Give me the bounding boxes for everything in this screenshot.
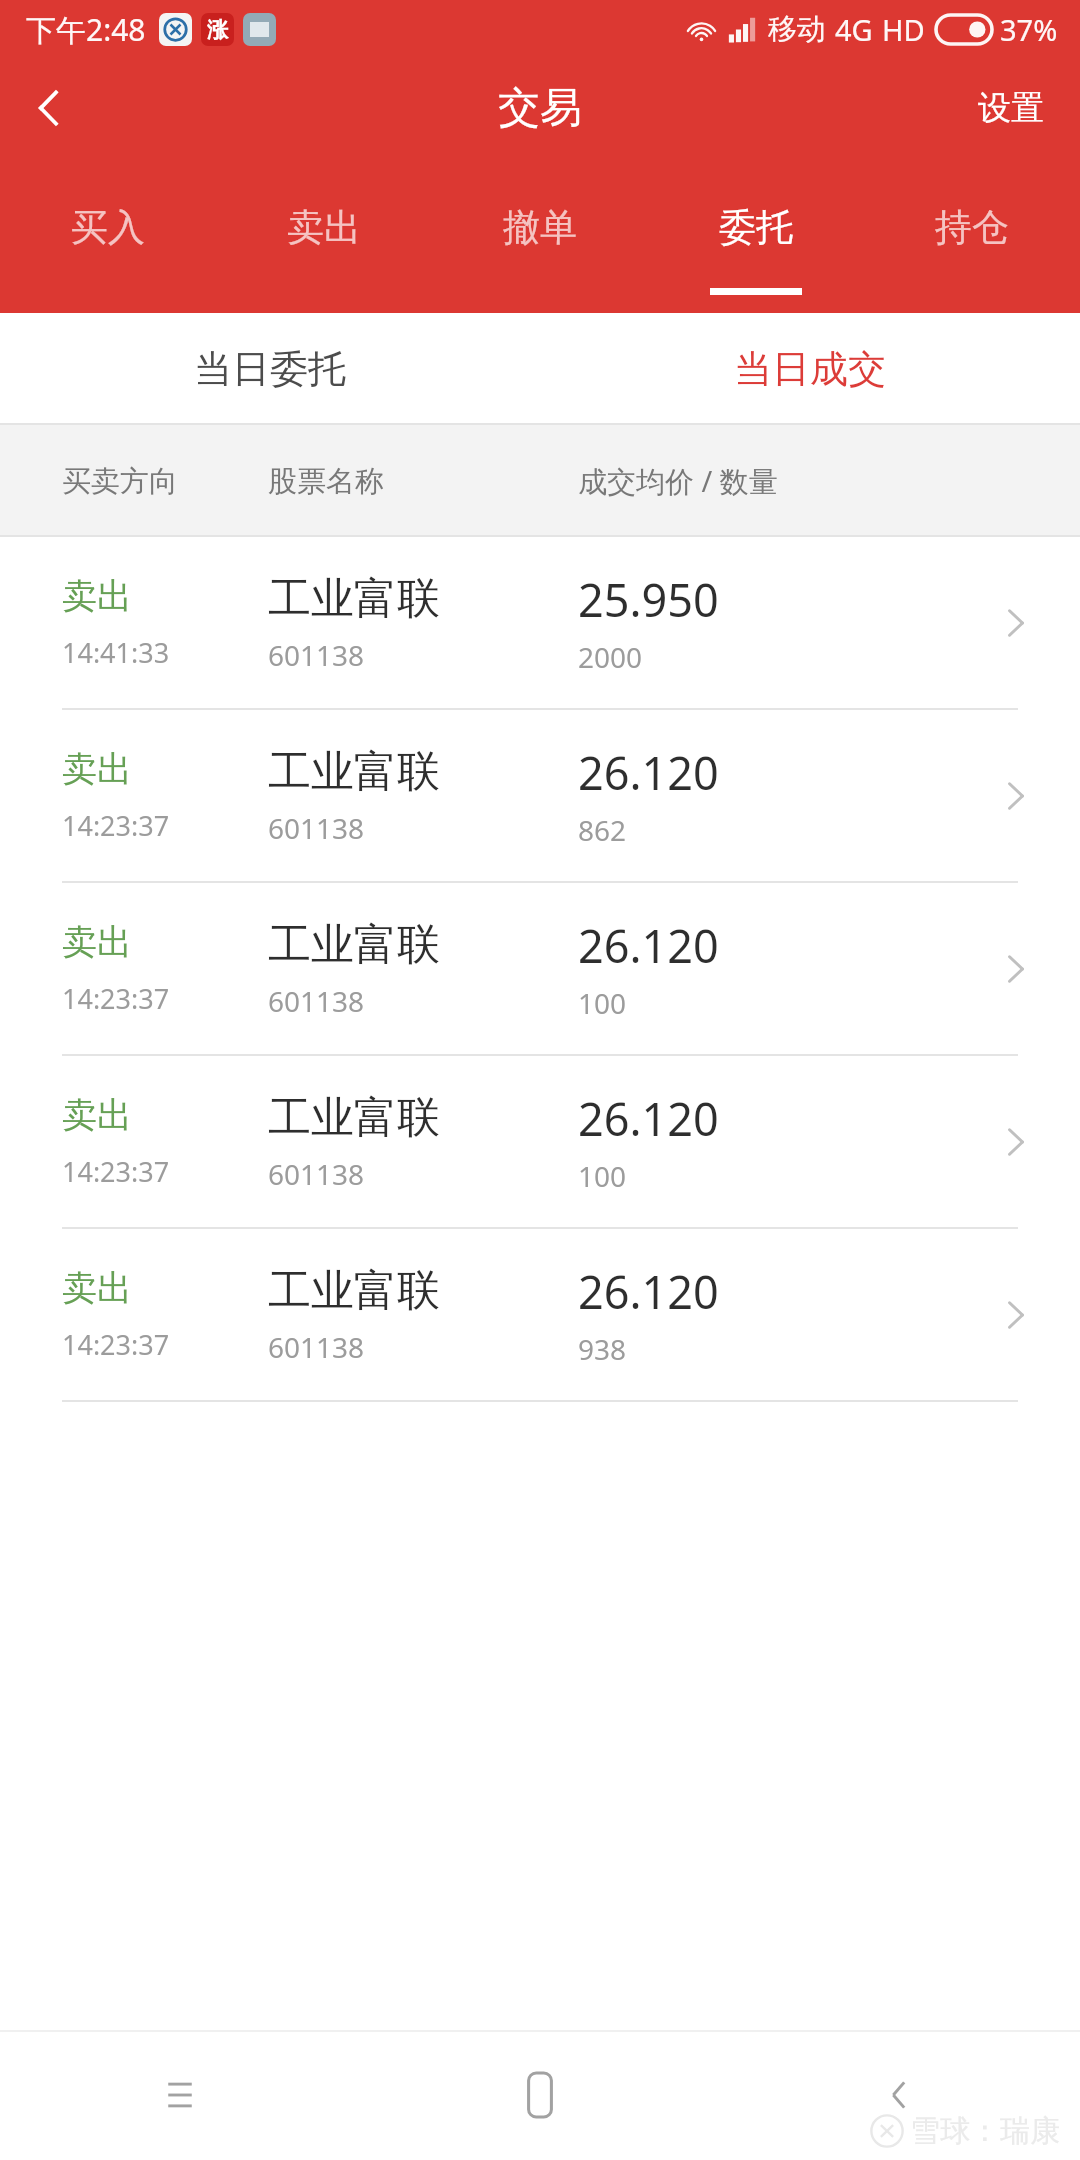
staticText: 工业富联 <box>268 918 440 972</box>
staticText: 当日委托 <box>194 345 346 393</box>
staticText: 雪球：瑞康 <box>910 2112 1060 2150</box>
staticText: 601138 <box>268 982 365 1020</box>
button[interactable]: 卖出 <box>216 158 432 313</box>
staticText: 938 <box>578 1330 627 1368</box>
staticText: 100 <box>578 984 627 1022</box>
staticText: 26.120 <box>578 1261 719 1322</box>
staticText: 601138 <box>268 1328 365 1366</box>
button[interactable]: 当日委托 <box>0 313 540 425</box>
button[interactable]: Home <box>360 2030 720 2160</box>
staticText: 涨 <box>207 17 228 43</box>
staticText: 卖出 <box>62 1093 132 1137</box>
staticText: 601138 <box>268 636 365 674</box>
staticText: 14:23:37 <box>62 1153 170 1190</box>
staticText: 14:41:33 <box>62 634 170 671</box>
button[interactable]: Back <box>0 58 100 158</box>
button[interactable]: 卖出 <box>0 1229 1080 1400</box>
staticText: 成交均价 / 数量 <box>578 461 778 501</box>
button[interactable]: 当日成交 <box>540 313 1080 425</box>
staticText: 移动 <box>768 11 826 48</box>
staticText: 601138 <box>268 1155 365 1193</box>
button[interactable]: 委托 <box>648 158 864 313</box>
staticText: 26.120 <box>578 915 719 976</box>
staticText: 卖出 <box>62 1266 132 1310</box>
staticText: 股票名称 <box>268 463 384 500</box>
staticText: 14:23:37 <box>62 807 170 844</box>
staticText: 下午2:48 <box>26 9 146 50</box>
button[interactable]: 卖出 <box>0 537 1080 708</box>
staticText: 持仓 <box>935 204 1009 251</box>
staticText: HD <box>882 10 925 49</box>
staticText: 26.120 <box>578 742 719 803</box>
staticText: 卖出 <box>62 574 132 618</box>
button[interactable]: 持仓 <box>864 158 1080 313</box>
staticText: 14:23:37 <box>62 1326 170 1363</box>
staticText: 委托 <box>719 204 793 251</box>
button[interactable]: 买入 <box>0 158 216 313</box>
button[interactable]: 卖出 <box>0 1056 1080 1227</box>
staticText: 卖出 <box>62 920 132 964</box>
staticText: 买入 <box>71 204 145 251</box>
staticText: 当日成交 <box>734 345 886 393</box>
button[interactable]: 撤单 <box>432 158 648 313</box>
staticText: 卖出 <box>62 747 132 791</box>
staticText: 26.120 <box>578 1088 719 1149</box>
staticText: 工业富联 <box>268 1091 440 1145</box>
staticText: 工业富联 <box>268 745 440 799</box>
staticText: 2000 <box>578 638 643 676</box>
staticText: 4G <box>835 10 873 49</box>
staticText: 交易 <box>498 82 582 135</box>
staticText: 100 <box>578 1157 627 1195</box>
button[interactable]: 卖出 <box>0 883 1080 1054</box>
staticText: 862 <box>578 811 627 849</box>
staticText: 撤单 <box>503 204 577 251</box>
staticText: 14:23:37 <box>62 980 170 1017</box>
staticText: 25.950 <box>578 569 719 630</box>
staticText: 工业富联 <box>268 572 440 626</box>
staticText: 37% <box>1000 10 1058 49</box>
staticText: 设置 <box>978 87 1044 129</box>
button[interactable]: 卖出 <box>0 710 1080 881</box>
button[interactable]: Recent apps <box>0 2030 360 2160</box>
button[interactable]: Back <box>720 2030 1080 2160</box>
button[interactable]: 设置 <box>942 58 1080 158</box>
staticText: 买卖方向 <box>62 463 178 500</box>
staticText: 卖出 <box>287 204 361 251</box>
staticText: 601138 <box>268 809 365 847</box>
staticText: 工业富联 <box>268 1264 440 1318</box>
